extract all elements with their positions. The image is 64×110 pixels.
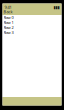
staticText: Row 3 <box>3 30 13 35</box>
staticText: Row 1 <box>3 20 13 25</box>
staticText: ▮▮▮ <box>53 5 59 9</box>
staticText: 9:41 <box>4 5 11 10</box>
staticText: Row 2 <box>3 25 13 30</box>
staticText: Row 0 <box>3 15 13 20</box>
staticText: Back <box>3 9 12 14</box>
